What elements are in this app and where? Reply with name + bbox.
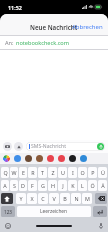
staticText: An: <box>5 39 14 47</box>
button[interactable]: Leerzeichen <box>17 206 91 217</box>
staticText: Q <box>3 169 8 176</box>
button[interactable]: Abbrechen <box>70 21 105 33</box>
button[interactable]: H <box>48 180 57 191</box>
button[interactable]: R <box>28 167 37 178</box>
staticText: SMS-Nachricht <box>31 143 67 150</box>
staticText: S <box>13 182 16 189</box>
button[interactable]: P <box>88 167 97 178</box>
button[interactable]: K <box>68 180 77 191</box>
staticText: O <box>80 169 85 176</box>
button[interactable]: Ü <box>98 167 107 178</box>
button[interactable]: Memoji <box>36 155 43 162</box>
button[interactable]: Ö <box>88 180 97 191</box>
button[interactable]: X <box>27 193 37 204</box>
button[interactable]: App <box>80 155 87 162</box>
button[interactable]: Eingabetaste <box>93 206 107 217</box>
button[interactable]: L <box>78 180 87 191</box>
button[interactable]: Y <box>16 193 26 204</box>
button[interactable]: 123 <box>1 206 15 217</box>
button[interactable]: B <box>60 193 70 204</box>
button[interactable]: T <box>38 167 47 178</box>
button[interactable]: M <box>82 193 92 204</box>
staticText: C <box>41 195 45 202</box>
button[interactable]: O <box>78 167 87 178</box>
staticText: J <box>62 182 64 189</box>
button[interactable]: SMS-Nachricht <box>26 142 105 151</box>
staticText: L <box>81 182 84 189</box>
button[interactable]: W <box>10 167 18 178</box>
staticText: W <box>11 169 17 176</box>
staticText: Ö <box>90 182 95 189</box>
button[interactable]: An: <box>0 36 108 49</box>
button[interactable]: Löschen <box>95 193 107 204</box>
staticText: D <box>21 182 25 189</box>
button[interactable]: Memoji <box>25 155 32 162</box>
staticText: I <box>72 169 74 176</box>
staticText: T <box>41 169 44 176</box>
staticText: B <box>63 195 67 202</box>
button[interactable]: N <box>71 193 81 204</box>
button[interactable]: App <box>47 155 54 162</box>
button[interactable]: F <box>28 180 37 191</box>
button[interactable]: I <box>68 167 77 178</box>
staticText: M <box>85 195 90 202</box>
staticText: Z <box>51 169 55 176</box>
staticText: G <box>41 182 45 189</box>
button[interactable]: App Store <box>14 155 21 162</box>
staticText: notebookcheck.com <box>16 39 69 47</box>
staticText: Abbrechen <box>72 23 103 31</box>
staticText: 123 <box>4 209 12 215</box>
button[interactable]: Ä <box>98 180 107 191</box>
staticText: Leerzeichen <box>40 208 68 215</box>
button[interactable]: D <box>19 180 27 191</box>
button[interactable]: V <box>49 193 59 204</box>
button[interactable]: Q <box>1 167 9 178</box>
staticText: V <box>52 195 56 202</box>
button[interactable]: App <box>69 155 76 162</box>
staticText: F <box>31 182 34 189</box>
staticText: P <box>91 169 95 176</box>
staticText: N <box>74 195 79 202</box>
staticText: Y <box>19 195 23 202</box>
button[interactable]: Kamera <box>3 142 12 151</box>
staticText: Neue Nachricht <box>30 23 78 31</box>
staticText: 11:52 <box>8 4 22 11</box>
staticText: U <box>61 169 65 176</box>
button[interactable]: Fotos <box>3 155 10 162</box>
button[interactable]: U <box>58 167 67 178</box>
button[interactable]: Senden <box>97 143 104 150</box>
staticText: X <box>30 195 34 202</box>
staticText: A <box>3 182 7 189</box>
button[interactable]: Apps <box>14 142 23 151</box>
staticText: E <box>22 169 25 176</box>
button[interactable]: Z <box>48 167 57 178</box>
button[interactable]: J <box>58 180 67 191</box>
staticText: Ü <box>101 169 105 176</box>
staticText: H <box>51 182 55 189</box>
button[interactable]: Emoji <box>4 222 11 229</box>
button[interactable]: C <box>38 193 48 204</box>
button[interactable]: Musik <box>58 155 65 162</box>
staticText: K <box>71 182 75 189</box>
staticText: R <box>31 169 35 176</box>
button[interactable]: A <box>1 180 9 191</box>
button[interactable]: Diktieren <box>97 222 104 229</box>
button[interactable]: E <box>19 167 27 178</box>
button[interactable]: Umschalttaste <box>1 193 13 204</box>
staticText: Ä <box>101 182 105 189</box>
button[interactable]: S <box>10 180 18 191</box>
button[interactable]: G <box>38 180 47 191</box>
